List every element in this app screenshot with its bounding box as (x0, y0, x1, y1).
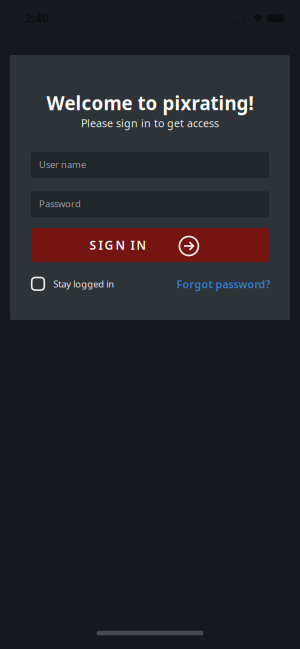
staticText: Forgot password? (176, 277, 270, 291)
staticText: User name (39, 158, 86, 171)
button[interactable]: User name (31, 152, 269, 178)
staticText: Password (39, 197, 81, 210)
button[interactable]: Forgot password? (176, 277, 270, 291)
staticText: 2:40 (25, 10, 49, 26)
staticText: Please sign in to get access (81, 116, 219, 130)
button[interactable]: Password (31, 191, 269, 217)
staticText: S I G N I N (89, 237, 146, 253)
staticText: Welcome to pixrating! (46, 91, 253, 115)
staticText: Stay logged in (53, 278, 114, 290)
button[interactable]: S I G N I N (31, 228, 269, 262)
button[interactable]: Stay logged in (32, 277, 114, 290)
